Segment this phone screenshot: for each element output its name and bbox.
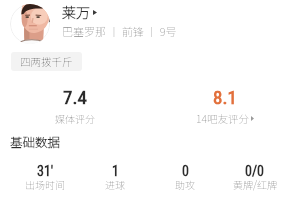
staticText: 助攻	[175, 177, 195, 191]
staticText: 7.4	[63, 86, 87, 108]
staticText: 1	[112, 163, 119, 179]
staticText: 基础数据	[10, 132, 61, 150]
button[interactable]: 8.1	[150, 86, 300, 126]
button[interactable]: Player avatar	[10, 4, 50, 44]
staticText: 媒体评分	[55, 111, 95, 125]
button[interactable]: 四两拨千斤	[11, 52, 82, 71]
staticText: 14吧友评分	[196, 111, 249, 126]
staticText: 0/0	[245, 163, 265, 179]
staticText: 出场时间	[25, 177, 65, 191]
staticText: 黄牌/红牌	[233, 177, 277, 191]
staticText: 莱万	[62, 2, 90, 22]
staticText: 四两拨千斤	[20, 54, 73, 69]
staticText: 巴塞罗那 丨 前锋 丨 9号	[62, 23, 177, 39]
button[interactable]: 莱万	[62, 2, 97, 22]
staticText: 8.1	[213, 86, 237, 108]
staticText: 0	[182, 163, 189, 179]
staticText: 进球	[105, 177, 125, 191]
staticText: 31'	[37, 163, 54, 179]
